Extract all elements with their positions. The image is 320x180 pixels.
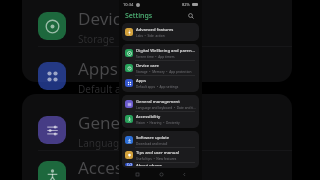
button[interactable]: Accessib [38,155,288,180]
button[interactable]: Device c [38,6,288,46]
staticText: Useful tips • New features [136,157,177,161]
staticText: Digital Wellbeing and parental controls [136,48,196,54]
staticText: Apps [78,57,118,80]
staticText: Language [78,136,128,150]
staticText: Screen time • App timers [136,55,175,59]
staticText: Language and keyboard • Date and time [136,106,196,110]
button[interactable]: Home [155,168,167,180]
button[interactable]: Advanced features [122,25,199,39]
button[interactable]: Search [186,11,196,21]
staticText: Advanced features [136,27,174,33]
staticText: General [78,111,141,134]
staticText: Storage • Memory • App protection [136,70,192,74]
button[interactable]: General management [122,97,199,111]
button[interactable]: Apps [38,56,288,96]
staticText: 10:34 [123,2,134,7]
button[interactable]: Back [178,168,190,180]
button[interactable]: Device care [122,61,199,75]
button[interactable]: About phone [122,163,199,166]
staticText: Device care [136,63,159,69]
staticText: Software update [136,135,170,141]
staticText: 82% [182,2,190,7]
staticText: Default app [78,82,133,96]
staticText: General management [136,99,180,105]
staticText: Labs • Side action [136,34,165,38]
button[interactable]: Apps [122,76,199,90]
button[interactable]: Tips and user manual [122,148,199,162]
staticText: Accessibility [136,114,161,120]
staticText: Accessib [78,156,146,179]
staticText: Settings [125,11,153,21]
staticText: Download and install [136,142,168,146]
staticText: Default apps • App settings [136,85,179,89]
staticText: Apps [136,78,146,84]
staticText: Vision • Hearing • Dexterity [136,121,180,125]
button[interactable]: General [38,110,288,150]
staticText: About phone [136,163,163,166]
button[interactable]: Accessibility [122,112,199,126]
staticText: Tips and user manual [136,150,179,156]
button[interactable]: Digital Wellbeing and parental controls [122,46,199,60]
staticText: Storage • [78,32,129,46]
button[interactable]: Software update [122,133,199,147]
button[interactable]: Recents [131,168,143,180]
staticText: Device c [78,7,144,30]
